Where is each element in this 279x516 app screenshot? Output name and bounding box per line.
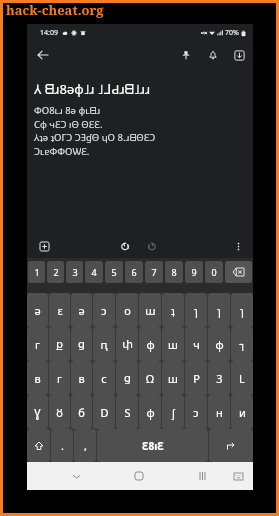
button[interactable]: ┐ — [231, 327, 253, 361]
button[interactable]: ԥ — [93, 327, 115, 361]
button[interactable]: в — [27, 361, 48, 395]
button[interactable]: ɿ — [185, 293, 207, 327]
button[interactable]: Home — [128, 465, 150, 487]
staticText: L — [239, 371, 245, 386]
button[interactable]: ф — [139, 327, 161, 361]
button[interactable]: 7 — [145, 261, 163, 283]
staticText: 1 — [34, 266, 40, 278]
button[interactable]: с — [93, 361, 115, 395]
staticText: 8 — [171, 266, 177, 278]
staticText: 70% — [225, 28, 239, 38]
button[interactable]: S — [116, 395, 138, 429]
button[interactable]: D — [93, 395, 115, 429]
staticText: ш — [168, 371, 178, 386]
button[interactable]: ф — [208, 327, 230, 361]
button[interactable]: ɯ — [139, 293, 161, 327]
staticText: о — [124, 303, 131, 318]
button[interactable]: ց — [71, 327, 92, 361]
button[interactable]: ч — [185, 327, 207, 361]
button[interactable]: 8 — [165, 261, 183, 283]
button[interactable]: в — [71, 361, 92, 395]
staticText: 0 — [211, 266, 217, 278]
button[interactable]: ф — [139, 395, 161, 429]
button[interactable]: More options — [230, 238, 246, 254]
staticText: н — [216, 405, 223, 420]
button[interactable]: ɿ — [208, 293, 230, 327]
button[interactable]: ǝ — [71, 293, 92, 327]
button[interactable]: 5 — [105, 261, 123, 283]
button[interactable]: Backspace — [225, 261, 252, 283]
button[interactable]: 0 — [205, 261, 223, 283]
button[interactable]: Ɛ8ıƐ — [97, 429, 208, 462]
staticText: ǝ — [34, 303, 41, 318]
button[interactable]: ց — [116, 361, 138, 395]
button[interactable]: г — [49, 361, 70, 395]
button[interactable]: ʇ — [162, 293, 184, 327]
button[interactable]: 2 — [47, 261, 64, 283]
staticText: D — [100, 405, 109, 420]
button[interactable]: ɔ — [93, 293, 115, 327]
staticText: ɿ — [194, 303, 198, 318]
button[interactable]: Ω — [139, 361, 161, 395]
button[interactable]: Insert — [35, 237, 53, 255]
staticText: ɔ — [101, 303, 107, 318]
button[interactable]: ȣ — [49, 395, 70, 429]
button[interactable]: Save note — [229, 45, 249, 65]
button[interactable]: г — [27, 327, 48, 361]
button[interactable]: Recents — [191, 465, 213, 487]
button[interactable]: Pin — [176, 45, 196, 65]
button[interactable]: փ — [116, 327, 138, 361]
button[interactable]: ε — [49, 293, 70, 327]
button[interactable]: , — [74, 429, 96, 462]
button[interactable]: Reminder — [203, 45, 223, 65]
staticText: б — [78, 405, 85, 420]
button[interactable]: 9 — [185, 261, 203, 283]
button[interactable]: и — [231, 395, 253, 429]
staticText: ф — [215, 337, 224, 352]
staticText: ԥ — [100, 337, 108, 352]
staticText: ɿ — [217, 303, 221, 318]
staticText: ɿ — [240, 303, 244, 318]
staticText: ε — [57, 303, 63, 318]
button[interactable]: ʃ — [162, 395, 184, 429]
staticText: Ɛ8ıƐ — [142, 439, 164, 453]
button[interactable]: ш — [162, 361, 184, 395]
staticText: 2 — [53, 266, 59, 278]
button[interactable]: 3 — [66, 261, 83, 283]
staticText: с — [101, 371, 107, 386]
button[interactable]: б — [71, 395, 92, 429]
button[interactable]: . — [51, 429, 73, 462]
button[interactable]: Redo — [143, 237, 161, 255]
staticText: ⅄ ᗺɹ8ǝɸ˩ɹ ˩ᒧԀɹᗺ˩ɹɹ — [34, 80, 151, 98]
button[interactable]: P — [185, 361, 207, 395]
button[interactable]: ш — [162, 327, 184, 361]
staticText: и — [239, 405, 246, 420]
button[interactable]: L — [231, 361, 253, 395]
staticText: hack-cheat.org — [6, 1, 104, 19]
button[interactable]: Back — [33, 45, 53, 65]
staticText: 14:09 — [40, 28, 58, 38]
button[interactable]: Undo — [115, 237, 133, 255]
staticText: ф — [146, 337, 155, 352]
button[interactable]: Ɣ — [27, 395, 48, 429]
button[interactable]: ք — [49, 327, 70, 361]
staticText: ɯ — [145, 303, 156, 318]
button[interactable]: ɿ — [231, 293, 253, 327]
button[interactable]: ǝ — [27, 293, 48, 327]
staticText: 4 — [91, 266, 97, 278]
button[interactable]: 1 — [28, 261, 45, 283]
button[interactable]: Shift — [27, 429, 50, 462]
button[interactable]: ɔ — [185, 395, 207, 429]
button[interactable]: 4 — [85, 261, 103, 283]
staticText: ʇ — [171, 303, 175, 318]
staticText: ч — [193, 337, 200, 352]
button[interactable]: 6 — [125, 261, 143, 283]
button[interactable]: 3 — [208, 361, 230, 395]
button[interactable]: н — [208, 395, 230, 429]
button[interactable]: о — [116, 293, 138, 327]
button[interactable]: Change keyboard — [227, 465, 249, 487]
staticText: S — [124, 405, 131, 420]
button[interactable]: Hide keyboard — [65, 465, 87, 487]
button[interactable]: Enter — [209, 429, 253, 462]
staticText: 5 — [111, 266, 117, 278]
